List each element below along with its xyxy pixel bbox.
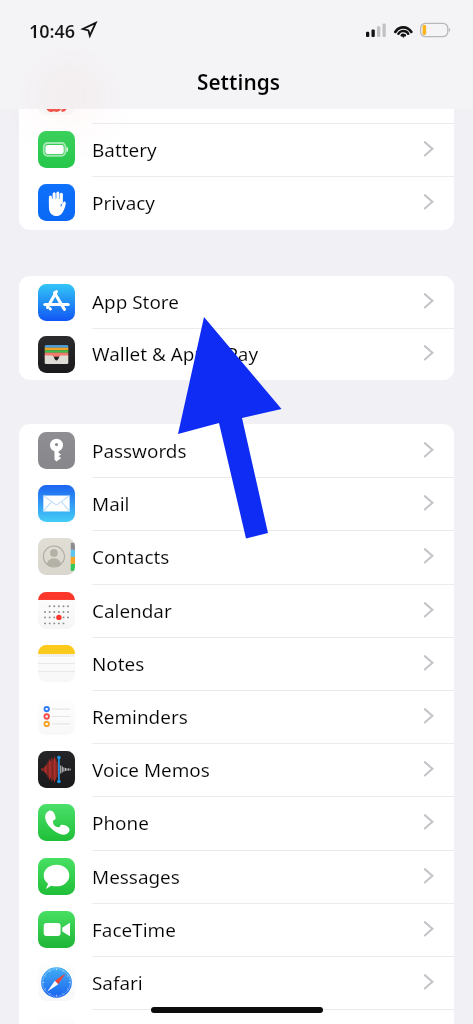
staticText: Passwords: [92, 438, 187, 464]
button[interactable]: Privacy: [19, 176, 454, 229]
staticText: Battery: [92, 137, 157, 163]
staticText: Messages: [92, 864, 180, 890]
staticText: Settings: [197, 68, 280, 96]
staticText: Calendar: [92, 598, 172, 624]
button[interactable]: Wallet & Apple Pay: [19, 328, 454, 380]
button[interactable]: FaceTime: [19, 903, 454, 956]
staticText: App Store: [92, 289, 179, 315]
staticText: Safari: [92, 970, 143, 996]
staticText: Mail: [92, 491, 130, 517]
button[interactable]: Emergency SOS: [19, 70, 454, 123]
button[interactable]: Reminders: [19, 690, 454, 743]
staticText: Emergency SOS: [92, 84, 232, 110]
button[interactable]: Phone: [19, 796, 454, 849]
button[interactable]: Notes: [19, 637, 454, 690]
button[interactable]: Passwords: [19, 424, 454, 477]
button[interactable]: Messages: [19, 850, 454, 903]
button[interactable]: Battery: [19, 123, 454, 176]
button[interactable]: App Store: [19, 276, 454, 328]
staticText: Notes: [92, 651, 145, 677]
staticText: Privacy: [92, 190, 156, 216]
staticText: 10:46: [29, 19, 76, 44]
button[interactable]: Calendar: [19, 584, 454, 637]
staticText: Wallet & Apple Pay: [92, 341, 259, 367]
staticText: Contacts: [92, 544, 170, 570]
button[interactable]: Stocks: [19, 1009, 454, 1024]
button[interactable]: Safari: [19, 956, 454, 1009]
staticText: FaceTime: [92, 917, 176, 943]
staticText: Phone: [92, 810, 149, 836]
staticText: Voice Memos: [92, 757, 210, 783]
button[interactable]: Contacts: [19, 530, 454, 583]
staticText: Reminders: [92, 704, 188, 730]
button[interactable]: Mail: [19, 477, 454, 530]
button[interactable]: Voice Memos: [19, 743, 454, 796]
